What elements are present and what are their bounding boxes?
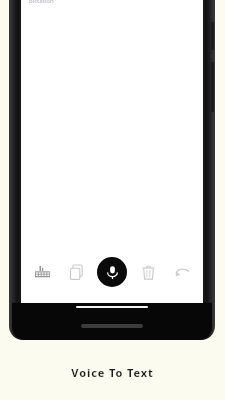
button[interactable]: Undo [169,259,195,285]
staticText: dictation [29,0,54,5]
button[interactable]: Keyboard [29,259,55,285]
button[interactable]: Record voice [97,257,127,287]
staticText: Voice To Text [0,365,225,380]
button[interactable]: Copy [63,259,89,285]
button[interactable]: Delete [135,259,161,285]
